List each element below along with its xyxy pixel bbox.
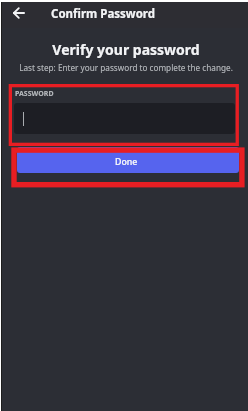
staticText: Confirm Password xyxy=(51,6,156,22)
staticText: Done xyxy=(115,156,138,168)
staticText: Last step: Enter your password to comple… xyxy=(2,62,248,73)
staticText: Verify your password xyxy=(2,40,248,59)
button[interactable]: Done xyxy=(17,147,239,173)
button[interactable]: Back xyxy=(5,0,32,26)
staticText: PASSWORD xyxy=(15,89,54,99)
button[interactable] xyxy=(14,103,235,134)
